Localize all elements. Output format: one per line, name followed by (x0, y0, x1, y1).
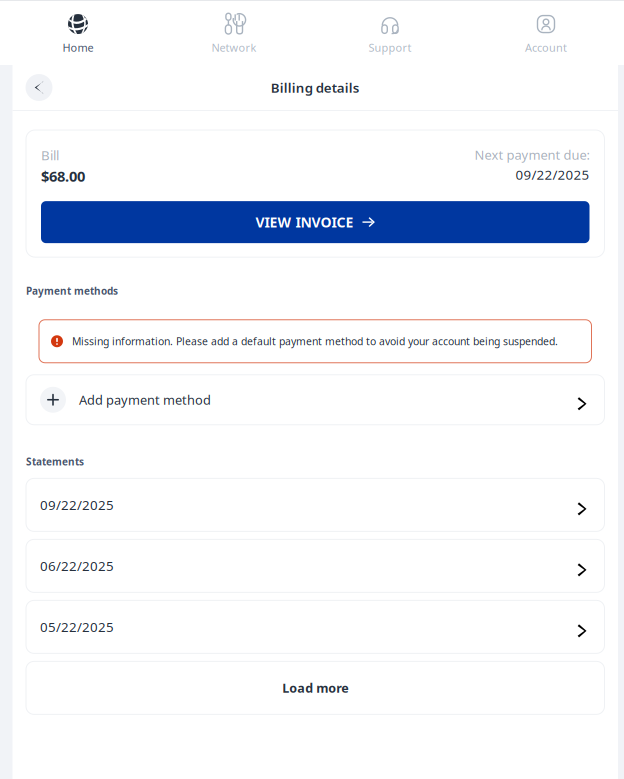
button[interactable]: Back (25, 74, 52, 101)
button[interactable]: 05/22/2025 (26, 600, 604, 653)
staticText: Missing information. Please add a defaul… (72, 334, 558, 348)
staticText: Support (368, 40, 411, 55)
staticText: Load more (282, 679, 348, 696)
button[interactable]: Home (0, 3, 156, 65)
staticText: Next payment due: (474, 146, 589, 164)
button[interactable]: Support (312, 3, 468, 65)
staticText: Payment methods (26, 284, 118, 298)
staticText: Account (525, 40, 567, 55)
staticText: $68.00 (41, 166, 85, 186)
button[interactable]: 06/22/2025 (26, 539, 604, 592)
staticText: VIEW INVOICE (255, 213, 353, 232)
staticText: Statements (26, 455, 84, 468)
staticText: Bill (41, 146, 59, 164)
staticText: Add payment method (79, 391, 211, 408)
button[interactable]: Add payment method (26, 375, 604, 425)
button[interactable]: Load more (26, 661, 604, 714)
staticText: 09/22/2025 (515, 166, 589, 184)
button[interactable]: 09/22/2025 (26, 478, 604, 531)
button[interactable]: Account (468, 3, 624, 65)
staticText: Network (211, 40, 256, 55)
button[interactable]: VIEW INVOICE (41, 201, 589, 243)
staticText: 06/22/2025 (40, 557, 114, 575)
staticText: 05/22/2025 (40, 618, 114, 636)
staticText: 09/22/2025 (40, 496, 114, 514)
staticText: Home (62, 40, 93, 55)
button[interactable]: Network (156, 3, 312, 65)
staticText: Billing details (271, 78, 360, 97)
